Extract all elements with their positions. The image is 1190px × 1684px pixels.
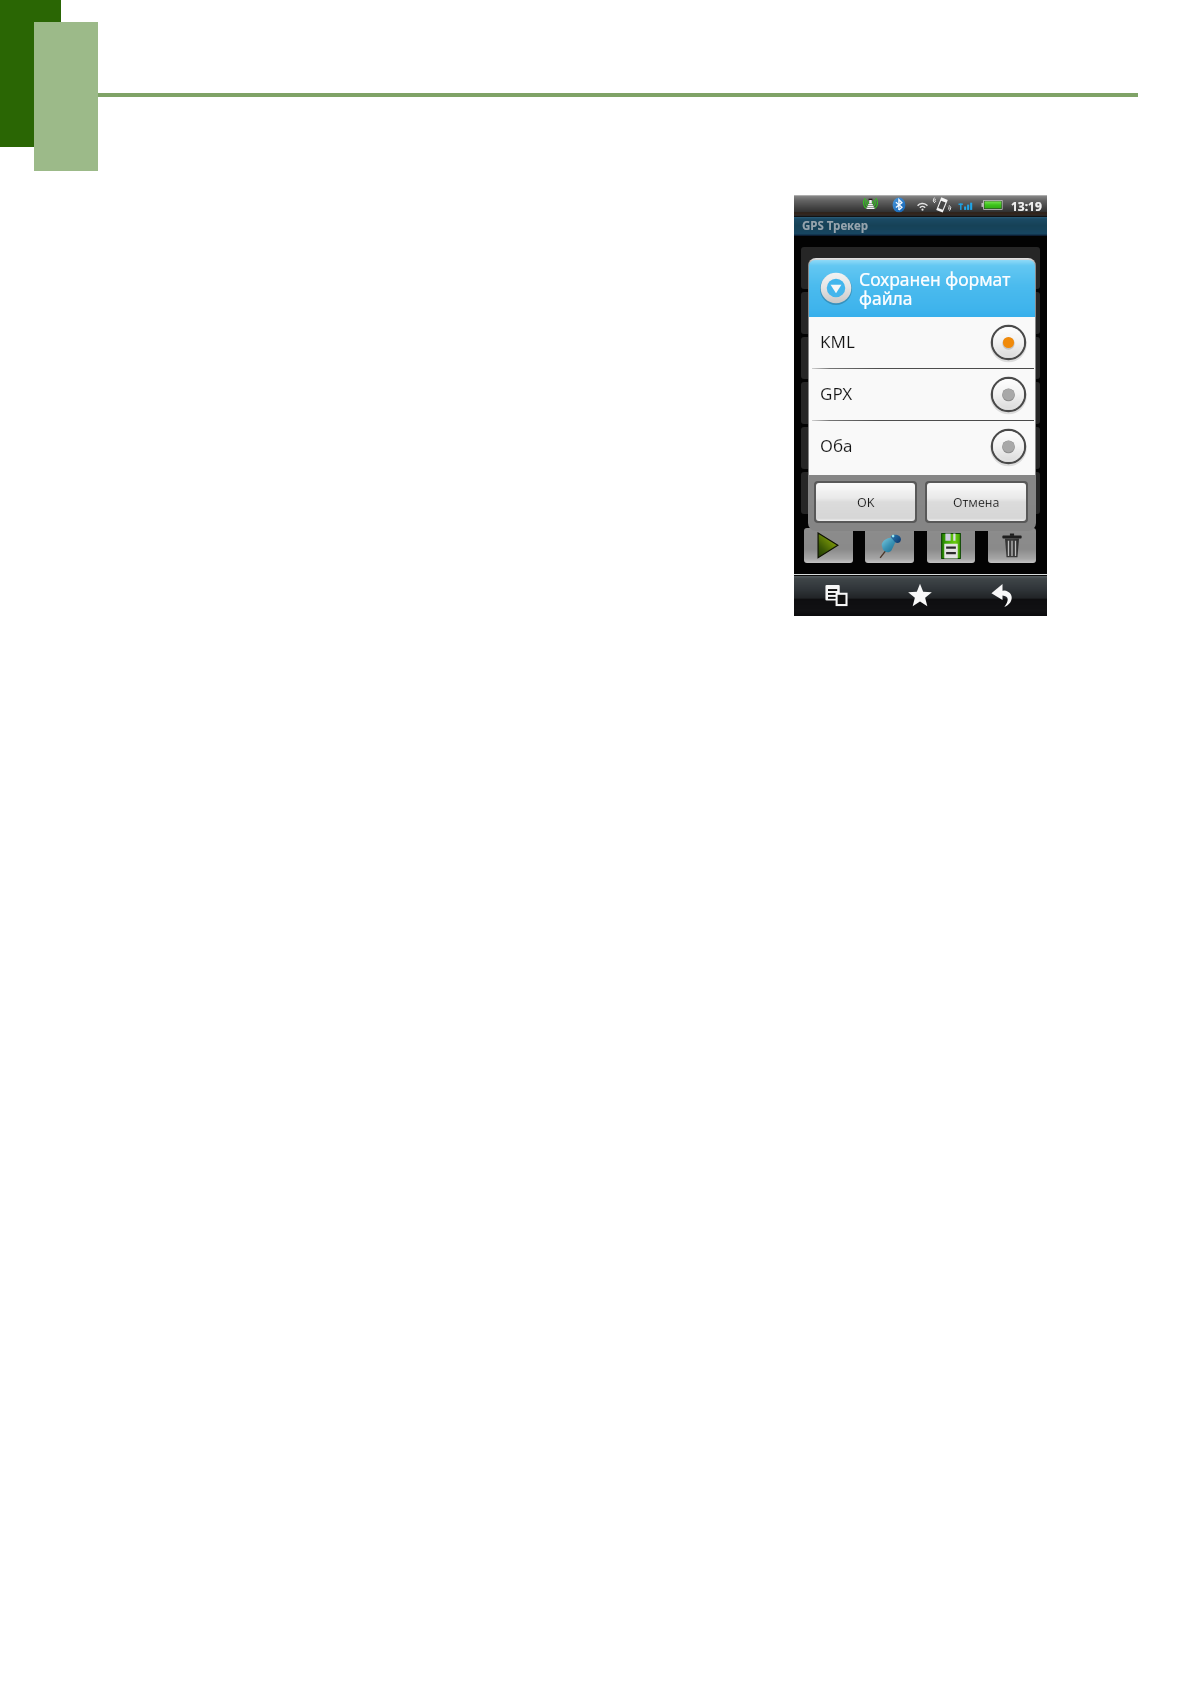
button[interactable]: GPX [809, 369, 1035, 420]
button[interactable]: Start [804, 528, 853, 563]
staticText: Сохранен формат файла [859, 267, 1025, 310]
button[interactable]: Favorite [899, 574, 941, 616]
button[interactable]: Оба [809, 421, 1035, 472]
staticText: OK [857, 494, 875, 511]
button[interactable]: Отмена [925, 481, 1028, 523]
button[interactable]: OK [814, 481, 917, 523]
button[interactable]: Add waypoint [865, 528, 914, 563]
button[interactable]: Save [927, 528, 975, 563]
button[interactable]: Back [981, 574, 1023, 616]
button[interactable]: Delete [988, 528, 1036, 563]
staticText: GPX [820, 382, 853, 405]
staticText: Оба [820, 434, 853, 457]
staticText: KML [820, 330, 855, 353]
button[interactable]: KML [809, 317, 1035, 368]
button[interactable]: Recent apps [815, 574, 857, 616]
staticText: 13:19 [1011, 198, 1042, 214]
staticText: Отмена [953, 494, 1000, 511]
staticText: GPS Трекер [802, 218, 868, 234]
